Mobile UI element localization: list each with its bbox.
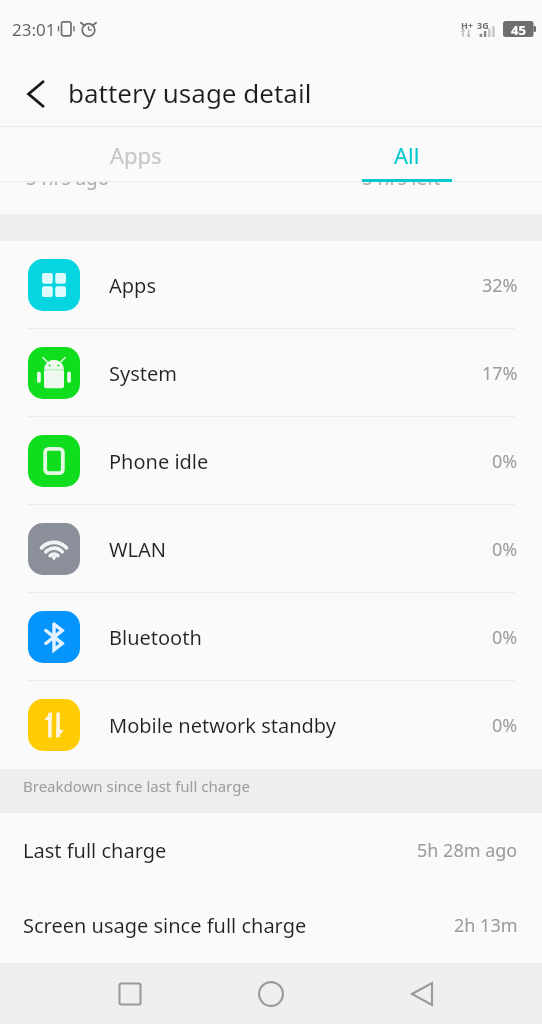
button[interactable]: Apps bbox=[0, 127, 271, 181]
staticText: 2h 13m bbox=[454, 913, 518, 938]
staticText: Phone idle bbox=[109, 448, 209, 475]
staticText: Apps bbox=[109, 272, 156, 299]
staticText: 3G bbox=[477, 19, 489, 31]
staticText: Bluetooth bbox=[109, 624, 202, 651]
button[interactable]: Screen usage since full charge bbox=[0, 888, 542, 963]
staticText: 45 bbox=[511, 21, 526, 39]
staticText: 0% bbox=[492, 537, 518, 562]
staticText: 32% bbox=[482, 273, 518, 298]
button[interactable]: Mobile network standby bbox=[0, 681, 542, 769]
staticText: Breakdown since last full charge bbox=[23, 776, 250, 796]
staticText: WLAN bbox=[109, 536, 167, 563]
button[interactable]: System bbox=[0, 329, 542, 417]
button[interactable]: WLAN bbox=[0, 505, 542, 593]
button[interactable]: Bluetooth bbox=[0, 593, 542, 681]
button[interactable]: Back bbox=[392, 964, 451, 1023]
staticText: 0% bbox=[492, 713, 518, 738]
staticText: 5h 28m ago bbox=[417, 838, 518, 863]
button[interactable]: All bbox=[271, 127, 542, 181]
staticText: 0% bbox=[492, 625, 518, 650]
button[interactable]: Recent apps bbox=[100, 964, 159, 1023]
staticText: System bbox=[109, 360, 177, 387]
button[interactable]: Home bbox=[241, 964, 300, 1023]
staticText: 17% bbox=[482, 361, 518, 386]
staticText: 5 hrs left bbox=[362, 165, 441, 191]
staticText: 0% bbox=[492, 449, 518, 474]
staticText: 5 hrs ago bbox=[26, 165, 110, 191]
staticText: battery usage detail bbox=[68, 75, 312, 110]
staticText: Apps bbox=[110, 140, 162, 170]
staticText: Mobile network standby bbox=[109, 712, 336, 739]
button[interactable]: Back bbox=[7, 65, 65, 123]
button[interactable]: Apps bbox=[0, 241, 542, 329]
staticText: Screen usage since full charge bbox=[23, 912, 307, 939]
button[interactable]: Last full charge bbox=[0, 813, 542, 888]
staticText: H+ bbox=[461, 19, 474, 31]
staticText: 23:01 bbox=[12, 18, 56, 41]
staticText: All bbox=[394, 140, 420, 170]
staticText: Last full charge bbox=[23, 837, 167, 864]
button[interactable]: Phone idle bbox=[0, 417, 542, 505]
